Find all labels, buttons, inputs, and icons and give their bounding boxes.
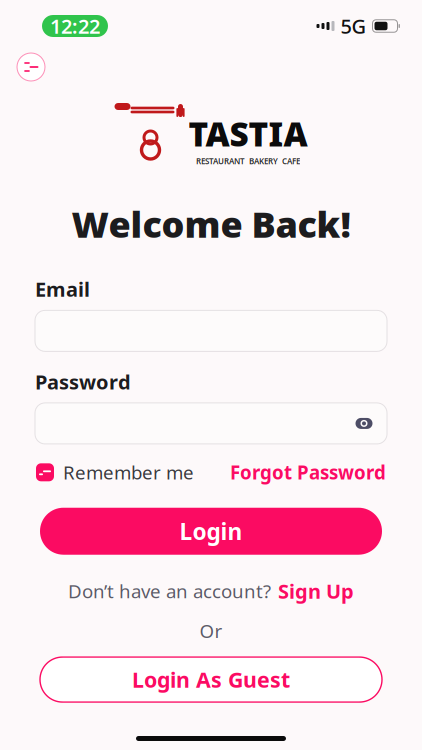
button[interactable]: Remember me — [36, 460, 194, 485]
button[interactable]: Login As Guest — [40, 657, 382, 702]
button[interactable]: Login — [40, 508, 382, 555]
staticText: Password — [35, 368, 131, 395]
staticText: 12:22 — [50, 13, 100, 39]
staticText: RESTAURANT BAKERY CAFE — [196, 156, 300, 166]
staticText: Remember me — [63, 460, 194, 485]
staticText: Welcome Back! — [71, 200, 350, 248]
button[interactable]: Email field — [35, 310, 387, 351]
staticText: Email — [35, 276, 90, 302]
staticText: 5G — [340, 13, 366, 39]
button[interactable]: Sign Up — [278, 578, 354, 604]
staticText: Or — [199, 618, 222, 643]
staticText: Sign Up — [278, 578, 354, 604]
staticText: Don’t have an account? — [68, 579, 271, 603]
staticText: Login As Guest — [132, 665, 290, 694]
staticText: TASTIA — [188, 112, 307, 156]
staticText: Forgot Password — [230, 460, 386, 485]
button[interactable]: Forgot Password — [230, 460, 386, 485]
button[interactable]: Password field, show password — [35, 403, 387, 444]
staticText: Login — [179, 516, 242, 546]
button[interactable]: Back — [14, 50, 48, 84]
